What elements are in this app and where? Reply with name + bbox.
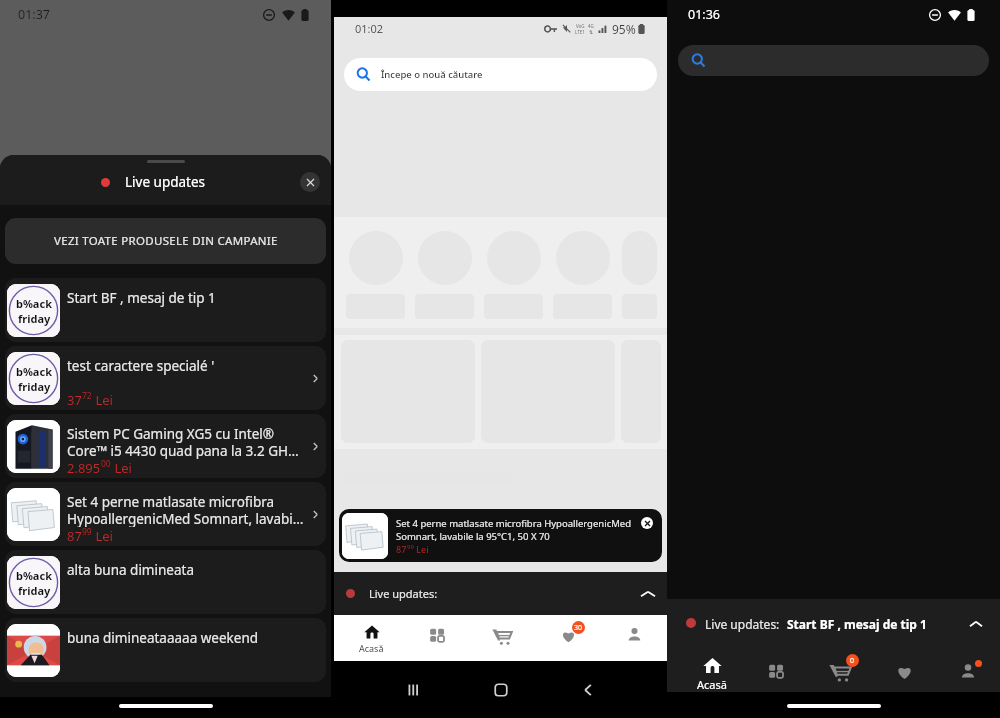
staticText: buna dimineataaaaa weekend xyxy=(67,629,259,647)
staticText: 99 xyxy=(407,543,414,551)
staticText: Lei xyxy=(92,527,113,545)
button[interactable]: GRID xyxy=(744,645,808,692)
button[interactable]: buna dimineataaaaa weekend xyxy=(5,618,326,682)
staticText: test caractere specialé ' xyxy=(67,357,215,375)
staticText: b%ack xyxy=(16,568,52,583)
staticText: Sistem PC Gaming XG5 cu Intel® Core™ i5 … xyxy=(67,425,304,459)
staticText: 37 xyxy=(67,391,82,409)
staticText: 87 xyxy=(396,543,407,555)
staticText: Set 4 perne matlasate microfibra Hypoall… xyxy=(396,517,641,543)
button[interactable]: CART xyxy=(808,645,872,692)
staticText: Live updates: xyxy=(369,586,438,601)
button[interactable]: b%ack xyxy=(5,550,326,614)
staticText: ⇅ xyxy=(589,29,594,35)
staticText: 01:36 xyxy=(688,6,720,23)
button[interactable]: CART xyxy=(469,615,535,661)
button[interactable]: Set 4 perne matlasate microfibra Hypoall… xyxy=(339,509,662,562)
button[interactable]: Home xyxy=(493,682,509,698)
button[interactable]: Live updates: xyxy=(334,572,667,615)
button[interactable]: Începe o nouă căutare xyxy=(344,58,657,91)
staticText: Începe o nouă căutare xyxy=(381,68,483,81)
staticText: Lei xyxy=(111,459,132,477)
staticText: 00 xyxy=(101,458,111,470)
button[interactable]: b%ack xyxy=(5,346,326,410)
button[interactable]: HEART xyxy=(535,615,601,661)
staticText: Start BF , mesaj de tip 1 xyxy=(787,616,927,632)
staticText: VEZI TOATE PRODUSELE DIN CAMPANIE xyxy=(54,233,278,249)
staticText: b%ack xyxy=(16,296,52,311)
staticText: alta buna dimineata xyxy=(67,561,194,579)
button[interactable]: HEART xyxy=(872,645,936,692)
button[interactable]: PERSON xyxy=(936,645,1000,692)
staticText: Acasă xyxy=(359,642,384,654)
staticText: b%ack xyxy=(16,364,52,379)
staticText: 2.895 xyxy=(67,459,101,477)
button[interactable]: Sistem PC Gaming XG5 cu Intel® Core™ i5 … xyxy=(5,414,326,478)
staticText: Acasă xyxy=(697,677,727,692)
staticText: 72 xyxy=(82,390,92,402)
button[interactable]: VEZI TOATE PRODUSELE DIN CAMPANIE xyxy=(5,218,326,264)
button[interactable]: Close xyxy=(300,172,320,192)
staticText: 30 xyxy=(574,623,583,633)
staticText: 95% xyxy=(612,21,636,37)
button[interactable]: Set 4 perne matlasate microfibra Hypoall… xyxy=(5,482,326,546)
button[interactable]: Close xyxy=(641,517,653,529)
staticText: Lei xyxy=(92,391,113,409)
staticText: friday xyxy=(18,379,51,394)
staticText: VoG xyxy=(576,23,585,29)
button[interactable]: Live updates: xyxy=(667,599,1000,645)
staticText: 0 xyxy=(850,656,855,666)
button[interactable]: Acasă xyxy=(339,615,404,661)
staticText: 01:37 xyxy=(18,6,50,23)
button[interactable]: GRID xyxy=(404,615,469,661)
button[interactable]: PERSON xyxy=(601,615,667,661)
staticText: 99 xyxy=(82,526,92,538)
staticText: 87 xyxy=(67,527,82,545)
staticText: friday xyxy=(18,311,51,326)
staticText: Start BF , mesaj de tip 1 xyxy=(67,289,216,307)
button[interactable]: Search xyxy=(678,45,989,76)
button[interactable]: Back xyxy=(580,682,596,698)
staticText: 01:02 xyxy=(355,21,384,36)
button[interactable]: Acasă xyxy=(679,645,744,692)
staticText: Live updates: xyxy=(705,616,780,632)
staticText: friday xyxy=(18,583,51,598)
staticText: Set 4 perne matlasate microfibra Hypoall… xyxy=(67,493,304,527)
staticText: 4G xyxy=(588,23,594,29)
staticText: Live updates xyxy=(125,173,206,191)
staticText: Lei xyxy=(414,543,429,555)
button[interactable]: b%ack xyxy=(5,278,326,342)
staticText: LTE1 xyxy=(575,29,585,35)
button[interactable]: Recents xyxy=(405,682,421,698)
